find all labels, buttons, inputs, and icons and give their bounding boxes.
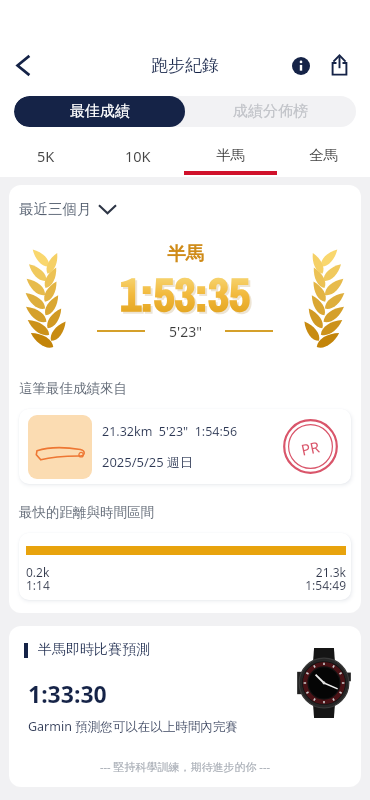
staticText: 最近三個月	[19, 200, 92, 218]
staticText: 半馬即時比賽預測	[38, 641, 150, 659]
button[interactable]: Back	[0, 43, 44, 87]
staticText: 全馬	[309, 146, 338, 164]
button[interactable]: 最佳成績	[14, 96, 185, 127]
staticText: 這筆最佳成績來自	[19, 380, 127, 397]
staticText: 1:53:35	[122, 265, 252, 327]
button[interactable]: 成績分佈榜	[185, 96, 356, 127]
button[interactable]: Info	[279, 44, 322, 87]
staticText: 跑步紀錄	[151, 55, 219, 76]
staticText: 1:33:30	[28, 678, 107, 709]
button[interactable]: 10K	[92, 135, 184, 177]
staticText: 2025/5/25 週日	[102, 453, 194, 471]
button[interactable]: 21.32km 5'23" 1:54:56	[19, 409, 351, 484]
staticText: 21.3k 1:54:49	[305, 564, 346, 594]
staticText: 最快的距離與時間區間	[19, 504, 154, 521]
staticText: 最佳成績	[70, 102, 130, 121]
staticText: 10K	[125, 146, 151, 166]
staticText: Garmin 預測您可以在以上時間內完賽	[28, 718, 238, 735]
staticText: 5K	[37, 146, 55, 166]
button[interactable]: 全馬	[277, 135, 370, 177]
staticText: 5'23"	[169, 322, 202, 341]
staticText: 半馬	[167, 242, 204, 265]
staticText: 半馬	[216, 146, 245, 164]
staticText: 21.32km 5'23" 1:54:56	[102, 423, 238, 440]
staticText: 成績分佈榜	[233, 102, 308, 121]
staticText: --- 堅持科學訓練，期待進步的你 ---	[100, 759, 270, 774]
button[interactable]: 最近三個月	[19, 200, 116, 218]
button[interactable]: Share	[318, 44, 360, 86]
button[interactable]: 5K	[0, 135, 92, 177]
staticText: 1:53:35	[120, 263, 250, 325]
button[interactable]: 半馬	[184, 135, 277, 177]
staticText: PR	[299, 436, 322, 460]
staticText: 0.2k 1:14	[26, 564, 50, 594]
